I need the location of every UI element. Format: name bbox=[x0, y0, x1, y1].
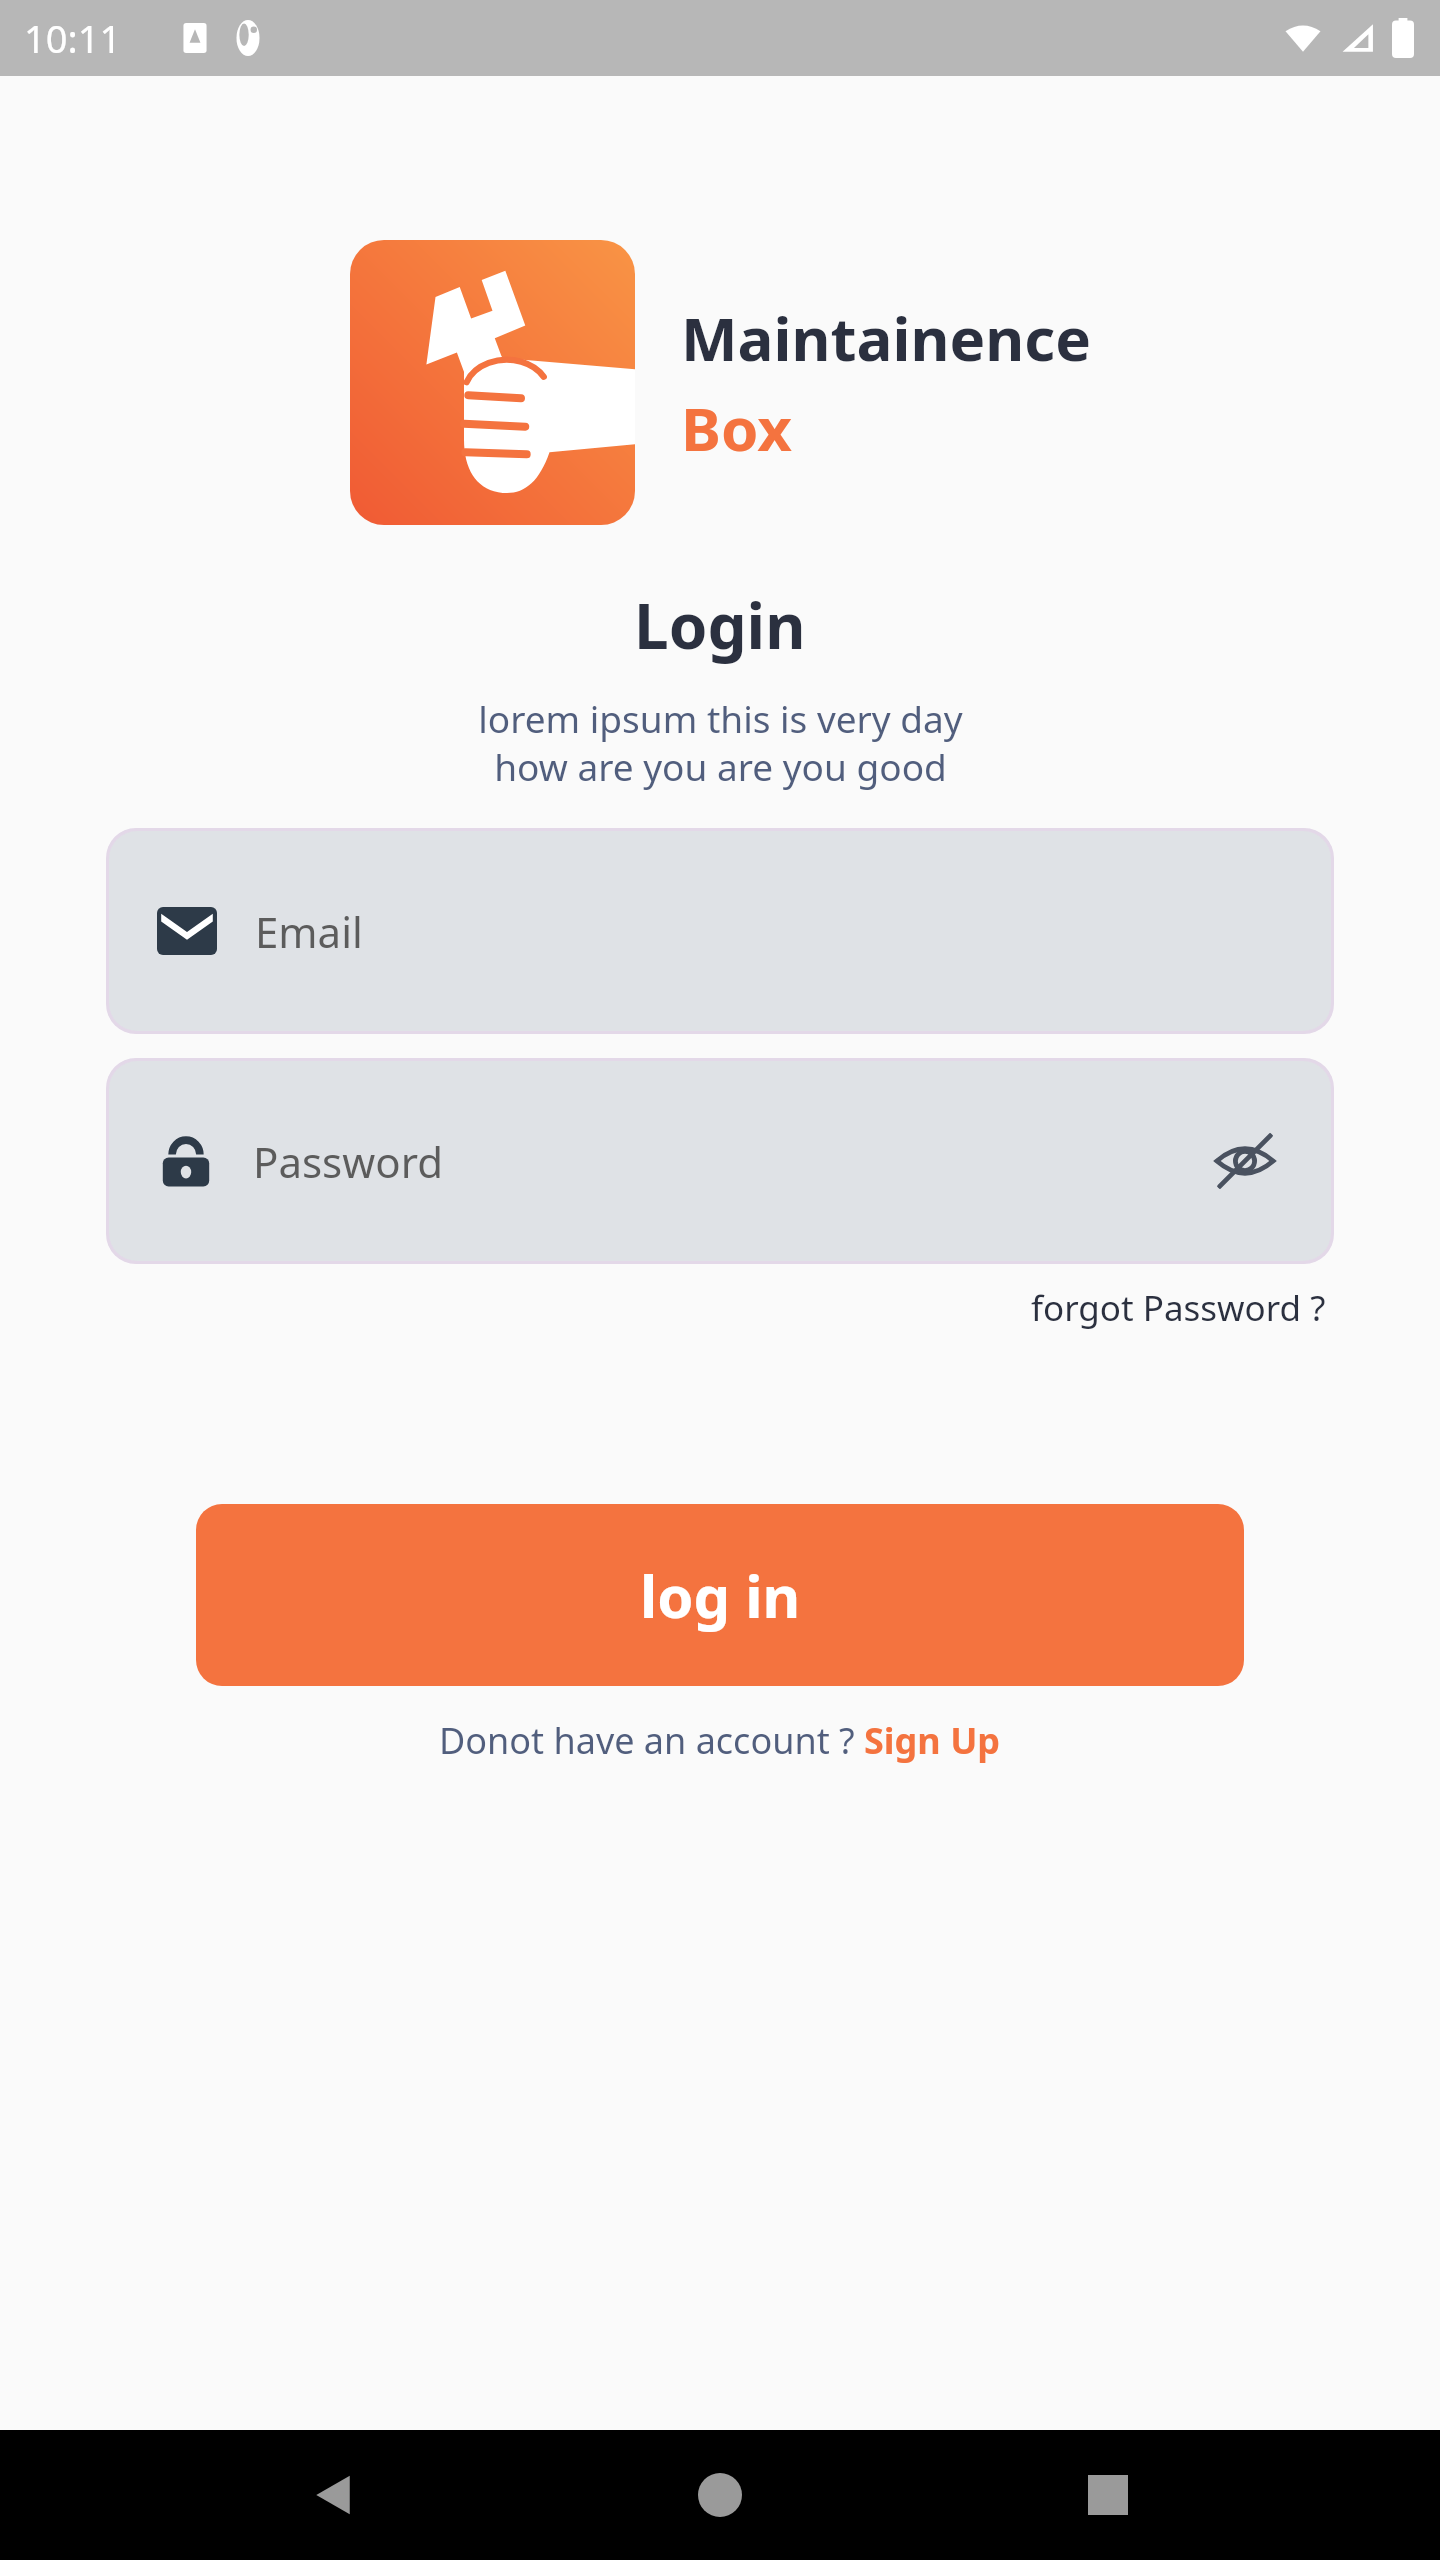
staticText: lorem ipsum this is very day how are you… bbox=[478, 693, 963, 792]
button[interactable]: Email bbox=[109, 831, 1331, 1031]
staticText: Password bbox=[253, 1133, 1207, 1190]
button[interactable]: log in bbox=[196, 1504, 1244, 1686]
button[interactable]: Show password bbox=[1207, 1123, 1283, 1199]
button[interactable]: Recent apps bbox=[1053, 2440, 1163, 2550]
staticText: Email bbox=[255, 903, 1283, 960]
staticText: 10:11 bbox=[24, 12, 122, 64]
button[interactable]: Back bbox=[278, 2440, 388, 2550]
staticText: Donot have an account ? Sign Up bbox=[439, 1716, 1001, 1765]
staticText: Box bbox=[681, 387, 792, 469]
button[interactable]: Home bbox=[665, 2440, 775, 2550]
button[interactable]: Donot have an account ? Sign Up bbox=[433, 1712, 1007, 1769]
button[interactable]: Password bbox=[109, 1061, 1331, 1261]
staticText: Login bbox=[634, 583, 806, 667]
staticText: Maintainence bbox=[681, 297, 1091, 379]
staticText: log in bbox=[640, 1556, 801, 1635]
button[interactable]: forgot Password ? bbox=[1027, 1280, 1330, 1336]
staticText: forgot Password ? bbox=[1031, 1284, 1326, 1332]
